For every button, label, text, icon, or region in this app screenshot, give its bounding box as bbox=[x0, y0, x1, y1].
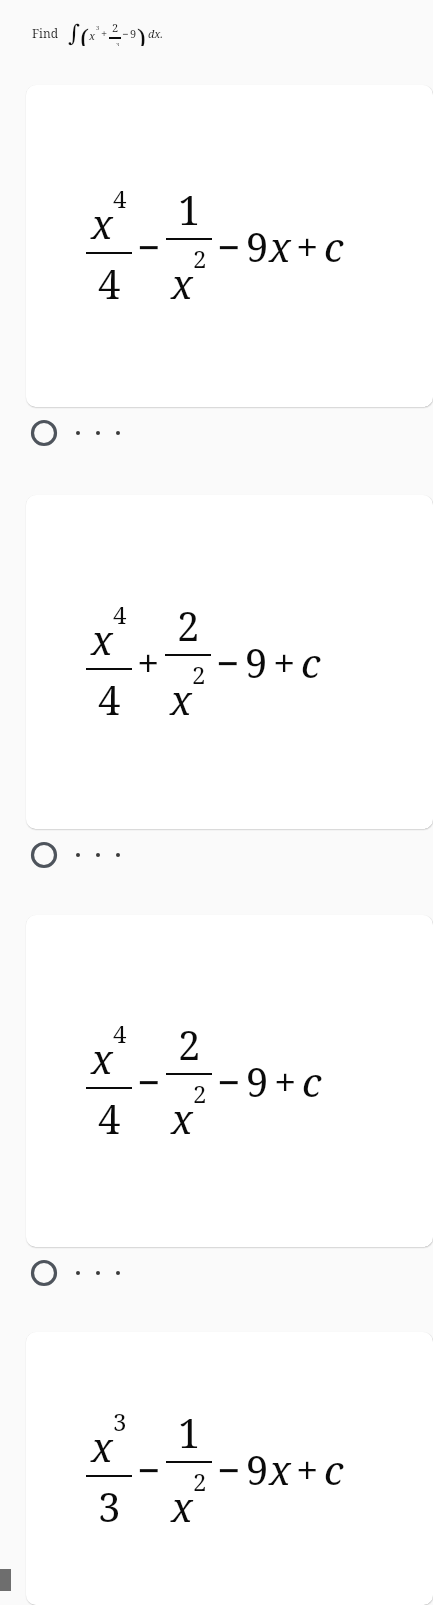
staticText: 4 bbox=[113, 182, 127, 215]
staticText: + bbox=[274, 1054, 297, 1108]
staticText: − bbox=[216, 635, 240, 689]
staticText: 9 bbox=[246, 1054, 269, 1108]
staticText: c bbox=[301, 635, 321, 689]
staticText: Find bbox=[32, 25, 59, 41]
staticText: 2 bbox=[192, 658, 206, 691]
staticText: 3 bbox=[113, 1405, 127, 1438]
staticText: 9 bbox=[246, 219, 269, 273]
staticText: 4 bbox=[98, 1091, 121, 1145]
staticText: 2 bbox=[112, 20, 119, 35]
staticText: + bbox=[296, 219, 319, 273]
staticText: x bbox=[89, 28, 96, 43]
staticText: + bbox=[137, 635, 160, 689]
staticText: 3 bbox=[96, 24, 100, 32]
staticText: − bbox=[137, 1054, 161, 1108]
staticText: c bbox=[324, 1442, 344, 1496]
staticText: 9 bbox=[246, 1442, 269, 1496]
staticText: ) bbox=[137, 20, 146, 46]
button[interactable]: Select this answer bbox=[0, 1247, 433, 1299]
staticText: − bbox=[122, 26, 129, 41]
staticText: 4 bbox=[98, 672, 121, 726]
staticText: x bbox=[171, 1479, 193, 1533]
staticText: x bbox=[170, 672, 192, 726]
staticText: 4 bbox=[98, 256, 121, 310]
staticText: 2 bbox=[178, 1017, 201, 1071]
staticText: 4 bbox=[113, 598, 127, 631]
staticText: − bbox=[137, 1442, 161, 1496]
staticText: 2 bbox=[193, 1077, 207, 1110]
staticText: 2 bbox=[193, 1465, 207, 1498]
staticText: 9 bbox=[130, 26, 137, 41]
staticText: 3 bbox=[98, 1479, 121, 1533]
staticText: x bbox=[171, 1091, 193, 1145]
staticText: x bbox=[91, 1031, 113, 1085]
staticText: + bbox=[101, 26, 108, 41]
staticText: ( bbox=[80, 20, 89, 46]
staticText: + bbox=[273, 635, 296, 689]
button[interactable]: x bbox=[26, 85, 433, 407]
staticText: 3 bbox=[116, 41, 120, 46]
staticText: c bbox=[302, 1054, 322, 1108]
staticText: 1 bbox=[178, 182, 201, 236]
staticText: dx. bbox=[148, 26, 164, 41]
staticText: 1 bbox=[178, 1405, 201, 1459]
button[interactable]: Select this answer bbox=[0, 829, 433, 881]
staticText: 9 bbox=[245, 635, 268, 689]
staticText: 4 bbox=[113, 1017, 127, 1050]
staticText: 2 bbox=[193, 242, 207, 275]
button[interactable]: x bbox=[26, 915, 433, 1247]
staticText: x bbox=[91, 612, 113, 666]
staticText: x bbox=[269, 1442, 291, 1496]
staticText: − bbox=[217, 219, 241, 273]
staticText: x bbox=[91, 196, 113, 250]
button[interactable]: x bbox=[26, 1332, 433, 1605]
staticText: x bbox=[171, 256, 193, 310]
staticText: − bbox=[137, 219, 161, 273]
staticText: x bbox=[269, 219, 291, 273]
staticText: c bbox=[324, 219, 344, 273]
staticText: − bbox=[217, 1054, 241, 1108]
button[interactable]: x bbox=[26, 495, 433, 829]
button[interactable]: Select this answer bbox=[0, 407, 433, 459]
staticText: ∫ bbox=[68, 20, 80, 46]
staticText: + bbox=[296, 1442, 319, 1496]
staticText: x bbox=[91, 1419, 113, 1473]
staticText: − bbox=[217, 1442, 241, 1496]
staticText: 2 bbox=[177, 598, 200, 652]
